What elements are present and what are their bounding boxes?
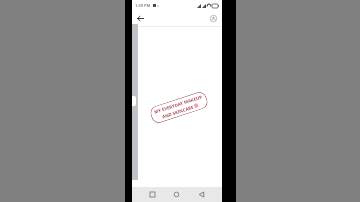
staticText: 1:09 PM bbox=[135, 3, 151, 8]
button[interactable]: Recent apps bbox=[140, 187, 164, 202]
staticText: MY EVERYDAY MAKEUP bbox=[153, 94, 203, 115]
button[interactable]: Account bbox=[208, 13, 219, 24]
button[interactable]: Back bbox=[135, 13, 146, 24]
button[interactable]: MY EVERYDAY MAKEUP bbox=[149, 90, 209, 125]
button[interactable]: Back bbox=[189, 187, 214, 202]
staticText: AND SKINCARE bbox=[161, 104, 194, 119]
button[interactable]: Home bbox=[164, 187, 189, 202]
